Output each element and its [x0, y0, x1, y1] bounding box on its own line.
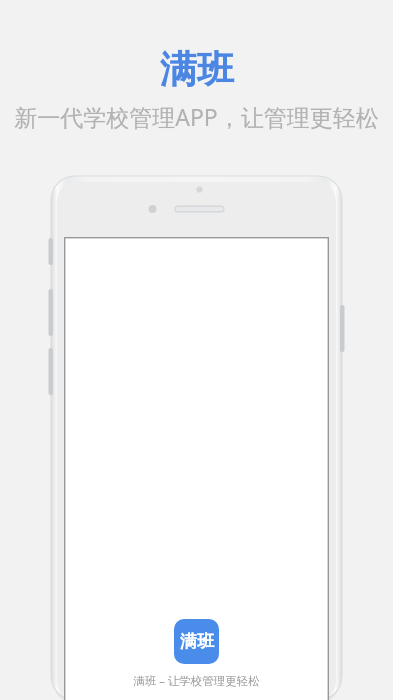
button[interactable]: 满班 [160, 46, 234, 93]
staticText: 满班 – 让学校管理更轻松 [133, 673, 260, 689]
staticText: 满班 [180, 631, 214, 652]
button[interactable]: 满班 app icon [174, 619, 219, 664]
staticText: 新一代学校管理APP，让管理更轻松 [14, 101, 379, 132]
staticText: 满班 [160, 46, 234, 93]
